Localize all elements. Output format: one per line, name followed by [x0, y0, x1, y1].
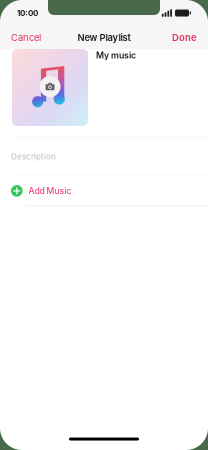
button[interactable]: Description — [0, 138, 208, 176]
button[interactable]: Cancel — [9, 28, 43, 47]
button[interactable]: Done — [170, 28, 199, 47]
staticText: 10:00 — [17, 8, 38, 18]
button[interactable]: Add Music — [0, 176, 208, 205]
staticText: My music — [96, 50, 136, 60]
staticText: Description — [11, 152, 56, 162]
button[interactable]: Choose playlist artwork — [12, 49, 88, 126]
staticText: Add Music — [29, 186, 72, 196]
staticText: Cancel — [11, 32, 41, 43]
staticText: New Playlist — [77, 32, 130, 43]
staticText: Done — [172, 32, 197, 43]
